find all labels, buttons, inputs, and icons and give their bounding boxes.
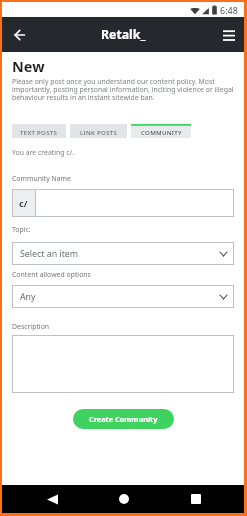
staticText: Select an item — [20, 248, 78, 260]
button[interactable]: Recent apps — [160, 485, 232, 513]
staticText: Please only post once you understand our… — [12, 77, 234, 102]
button[interactable]: Back — [16, 485, 88, 513]
button[interactable]: Home — [88, 485, 160, 513]
staticText: Description — [12, 322, 50, 331]
staticText: New — [12, 56, 45, 76]
button[interactable]: LINK POSTS — [70, 124, 127, 138]
other: Expand — [220, 295, 227, 299]
staticText: TEXT POSTS — [20, 128, 58, 136]
staticText: Any — [20, 291, 36, 303]
staticText: You are creating c/. — [12, 148, 75, 157]
staticText: Retalk_ — [101, 26, 146, 43]
button[interactable] — [36, 189, 234, 217]
staticText: COMMUNITY — [141, 128, 182, 136]
button[interactable]: Select an item — [12, 242, 234, 265]
staticText: Community Name — [12, 174, 71, 183]
button[interactable]: Create Community — [73, 409, 174, 429]
staticText: Content allowed options — [12, 270, 91, 279]
staticText: c/ — [19, 197, 28, 209]
button[interactable]: COMMUNITY — [131, 124, 191, 138]
button[interactable]: Any — [12, 285, 234, 308]
other: Expand — [220, 252, 227, 256]
staticText: Create Community — [89, 414, 158, 424]
button[interactable] — [12, 335, 234, 393]
staticText: 6:48 — [220, 4, 238, 16]
staticText: Topic: — [12, 225, 31, 234]
button[interactable]: Menu — [216, 22, 242, 48]
staticText: LINK POSTS — [80, 128, 118, 136]
button[interactable]: TEXT POSTS — [12, 124, 66, 138]
button[interactable]: Back — [6, 22, 32, 48]
